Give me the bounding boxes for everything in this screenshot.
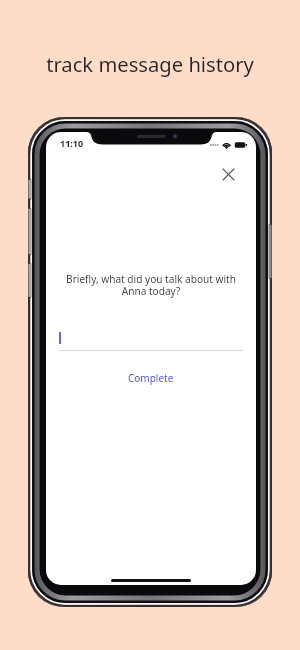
staticText: Complete bbox=[128, 371, 174, 385]
staticText: track message history bbox=[0, 50, 300, 78]
button[interactable]: Close bbox=[216, 162, 240, 186]
staticText: 11:10 bbox=[60, 137, 84, 149]
staticText: Briefly, what did you talk about with An… bbox=[66, 272, 236, 298]
button[interactable]: Complete bbox=[120, 368, 182, 388]
button[interactable] bbox=[59, 332, 243, 351]
